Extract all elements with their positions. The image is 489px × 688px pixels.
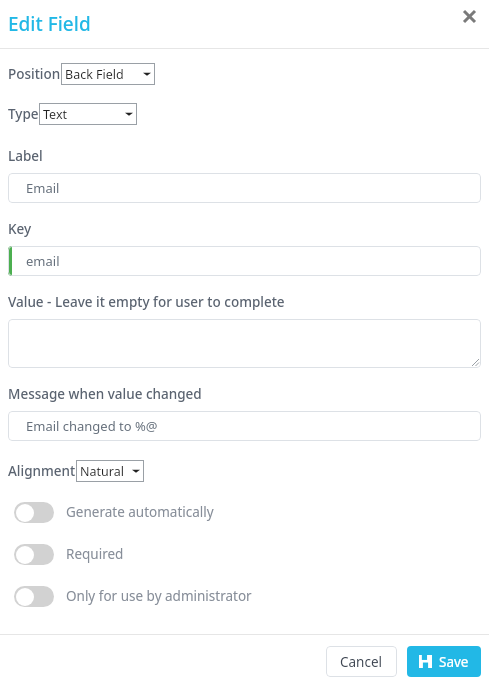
staticText: Label — [8, 147, 43, 165]
button[interactable]: email — [8, 246, 481, 276]
staticText: Key — [8, 220, 32, 238]
button[interactable]: Natural — [76, 460, 144, 482]
staticText: Email changed to %@ — [26, 417, 158, 435]
staticText: email — [26, 252, 60, 270]
button[interactable]: Text — [39, 103, 137, 125]
staticText: Value - Leave it empty for user to compl… — [8, 293, 285, 311]
staticText: Text — [43, 106, 68, 123]
button[interactable]: Required — [0, 537, 489, 571]
staticText: Only for use by administrator — [66, 587, 252, 605]
staticText: Edit Field — [8, 11, 91, 37]
button[interactable]: Only for use by administrator — [0, 579, 489, 613]
button[interactable]: Back Field — [61, 63, 155, 85]
button[interactable]: Email changed to %@ — [8, 411, 481, 441]
staticText: Natural — [80, 463, 124, 480]
staticText: Back Field — [65, 66, 124, 83]
button[interactable]: Close — [457, 4, 481, 28]
staticText: Position — [8, 65, 61, 83]
staticText: Generate automatically — [66, 503, 214, 521]
staticText: Alignment — [8, 462, 76, 480]
button[interactable] — [8, 319, 481, 368]
staticText: Email — [26, 179, 60, 197]
staticText: Cancel — [340, 653, 383, 671]
button[interactable]: Cancel — [326, 646, 397, 677]
button[interactable]: Email — [8, 173, 481, 203]
staticText: Type — [8, 105, 39, 123]
button[interactable]: Save — [407, 646, 481, 677]
staticText: Save — [439, 653, 469, 671]
button[interactable]: Generate automatically — [0, 495, 489, 529]
staticText: Message when value changed — [8, 385, 202, 403]
staticText: Required — [66, 545, 124, 563]
